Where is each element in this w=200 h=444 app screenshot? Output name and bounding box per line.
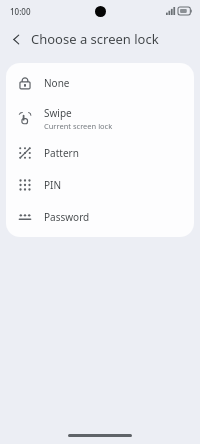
button[interactable]: Pattern — [6, 137, 194, 169]
staticText: Swipe — [44, 106, 72, 120]
button[interactable]: None — [6, 67, 194, 99]
staticText: Current screen lock — [44, 121, 113, 131]
button[interactable]: Swipe — [6, 99, 194, 137]
staticText: None — [44, 76, 70, 90]
staticText: Choose a screen lock — [31, 30, 159, 48]
staticText: PIN — [44, 178, 62, 192]
button[interactable]: Password — [6, 201, 194, 233]
staticText: Password — [44, 210, 90, 224]
button[interactable]: PIN — [6, 169, 194, 201]
button[interactable]: Back — [3, 26, 29, 52]
staticText: 10:00 — [10, 6, 31, 17]
staticText: Pattern — [44, 146, 79, 160]
